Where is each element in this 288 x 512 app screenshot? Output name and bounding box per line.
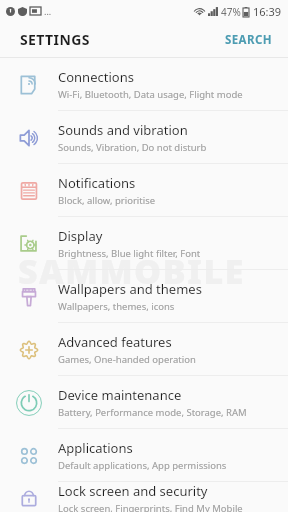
button[interactable]: Connections	[0, 58, 288, 111]
button[interactable]: Device maintenance	[0, 376, 288, 429]
staticText: 16:39	[253, 4, 282, 19]
staticText: Wi-Fi, Bluetooth, Data usage, Flight mod…	[58, 88, 243, 101]
staticText: SEARCH	[225, 32, 272, 48]
button[interactable]: Applications	[0, 429, 288, 482]
staticText: Connections	[58, 68, 134, 86]
button[interactable]: Display	[0, 217, 288, 270]
staticText: Games, One-handed operation	[58, 353, 196, 366]
button[interactable]: Advanced features	[0, 323, 288, 376]
button[interactable]: Notifications	[0, 164, 288, 217]
staticText: 47%	[221, 5, 241, 19]
staticText: Applications	[58, 439, 133, 457]
staticText: Lock screen, Fingerprints, Find My Mobil…	[58, 502, 243, 512]
staticText: Brightness, Blue light filter, Font	[58, 247, 201, 260]
staticText: Wallpapers and themes	[58, 280, 202, 298]
staticText: Device maintenance	[58, 386, 182, 404]
staticText: SETTINGS	[20, 30, 90, 49]
button[interactable]: Lock screen and security	[0, 482, 288, 512]
staticText: Display	[58, 227, 103, 245]
staticText: Wallpapers, themes, icons	[58, 300, 175, 313]
staticText: SAMMOBILE	[18, 248, 245, 294]
staticText: Battery, Performance mode, Storage, RAM	[58, 406, 247, 419]
button[interactable]: SEARCH	[209, 26, 288, 54]
staticText: Block, allow, prioritise	[58, 194, 156, 207]
button[interactable]: Wallpapers and themes	[0, 270, 288, 323]
staticText: Notifications	[58, 174, 136, 192]
button[interactable]: Sounds and vibration	[0, 111, 288, 164]
staticText: Sounds, Vibration, Do not disturb	[58, 141, 207, 154]
staticText: Sounds and vibration	[58, 121, 188, 139]
staticText: Lock screen and security	[58, 482, 208, 500]
staticText: Default applications, App permissions	[58, 459, 227, 472]
staticText: Advanced features	[58, 333, 172, 351]
staticText: ...	[44, 5, 52, 17]
